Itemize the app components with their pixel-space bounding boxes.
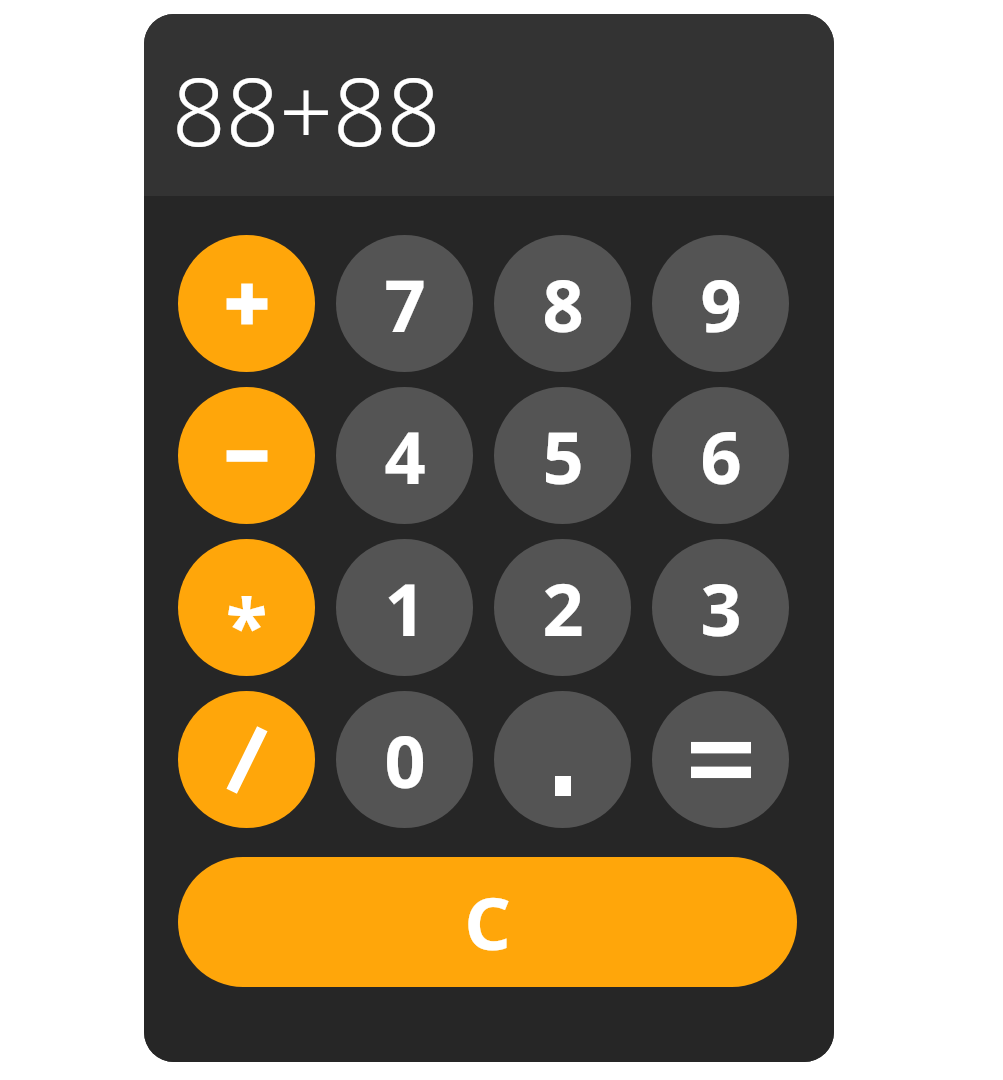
button[interactable]: 0 [336, 691, 473, 828]
button[interactable] [494, 691, 631, 828]
staticText: 3 [700, 559, 742, 657]
staticText: 2 [542, 559, 584, 657]
button[interactable]: Minus [178, 387, 315, 524]
staticText: C [464, 873, 511, 971]
button[interactable]: 2 [494, 539, 631, 676]
button[interactable]: 9 [652, 235, 789, 372]
staticText: 4 [384, 407, 426, 505]
staticText: 8 [542, 255, 584, 353]
button[interactable]: C [178, 857, 797, 987]
button[interactable] [652, 691, 789, 828]
staticText: 7 [384, 255, 426, 353]
button[interactable]: 8 [494, 235, 631, 372]
staticText: 1 [384, 559, 426, 657]
staticText: 9 [700, 255, 742, 353]
staticText: * [226, 572, 268, 676]
button[interactable]: 1 [336, 539, 473, 676]
button[interactable]: 4 [336, 387, 473, 524]
button[interactable]: Divide [178, 691, 315, 828]
button[interactable]: 5 [494, 387, 631, 524]
staticText: 6 [700, 407, 742, 505]
button[interactable]: 3 [652, 539, 789, 676]
staticText: 5 [542, 407, 584, 505]
button[interactable]: 6 [652, 387, 789, 524]
staticText: 0 [384, 711, 426, 809]
button[interactable]: Multiply [178, 539, 315, 676]
button[interactable]: Plus [178, 235, 315, 372]
staticText: 88+88 [172, 46, 441, 174]
button[interactable]: 7 [336, 235, 473, 372]
